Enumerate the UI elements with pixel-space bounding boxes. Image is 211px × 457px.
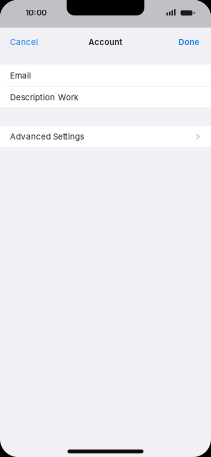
- staticText: Email: [10, 70, 31, 80]
- button[interactable]: Cancel: [0, 28, 52, 56]
- button[interactable]: Description: [0, 87, 211, 107]
- staticText: Work: [58, 92, 78, 102]
- staticText: Advanced Settings: [10, 132, 84, 141]
- staticText: Done: [179, 37, 200, 47]
- staticText: 10:00: [25, 8, 46, 18]
- button[interactable]: Email: [0, 64, 211, 86]
- button[interactable]: Done: [159, 28, 211, 56]
- button[interactable]: Advanced Settings: [0, 126, 211, 147]
- staticText: Cancel: [10, 37, 38, 47]
- staticText: Description: [10, 92, 55, 102]
- staticText: Account: [88, 37, 122, 47]
